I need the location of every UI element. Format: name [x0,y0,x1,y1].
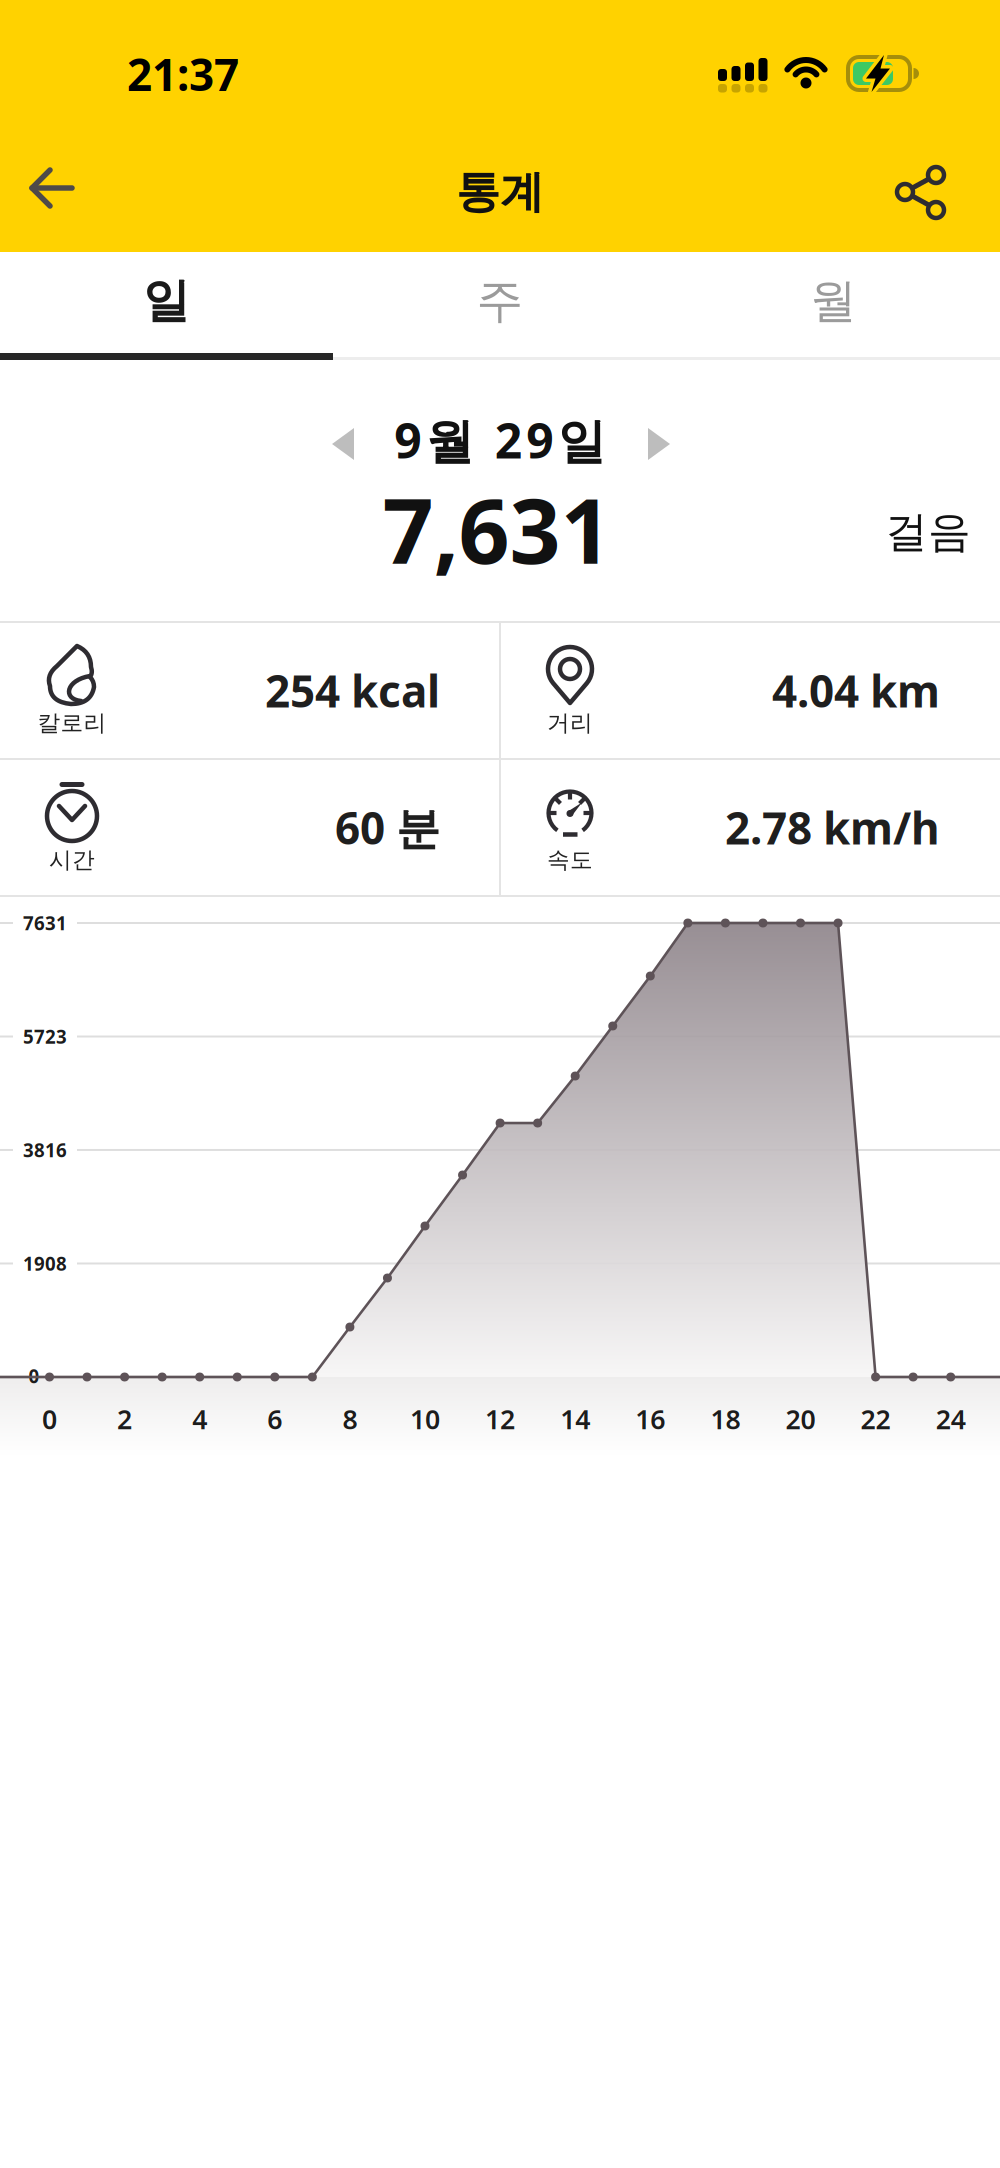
staticText: 거리 [547,709,593,737]
button[interactable]: 주 [333,251,666,351]
staticText: 0 [42,1401,57,1437]
staticText: 7,631 [382,470,611,588]
staticText: 0 [28,1364,39,1388]
staticText: 4 [192,1401,207,1437]
staticText: 3816 [23,1138,67,1162]
staticText: 22 [861,1401,891,1437]
staticText: 걸음 [885,506,971,558]
staticText: 월 [810,272,857,330]
button[interactable]: 일 [0,251,333,351]
staticText: 8 [342,1401,357,1437]
staticText: 통계 [456,165,544,219]
staticText: 6 [267,1401,282,1437]
staticText: 16 [635,1401,665,1437]
staticText: 24 [936,1401,966,1437]
button[interactable]: Back [18,157,86,219]
staticText: 속도 [547,846,593,874]
staticText: 21:37 [127,45,239,103]
staticText: 5723 [23,1024,67,1049]
staticText: 12 [485,1401,515,1437]
button[interactable]: Next day [638,418,680,470]
staticText: 4.04 km [772,661,940,720]
staticText: 10 [410,1401,440,1437]
button[interactable]: 월 [667,251,1000,351]
button[interactable]: Share [885,155,956,230]
staticText: 9월 29일 [394,408,606,472]
staticText: 주 [476,272,523,330]
staticText: 일 [143,272,190,330]
staticText: 칼로리 [37,709,106,737]
staticText: 18 [710,1401,740,1437]
staticText: 2.78 km/h [725,798,940,857]
staticText: 14 [560,1401,590,1437]
staticText: 20 [785,1401,815,1437]
staticText: 60 분 [335,798,440,857]
staticText: 254 kcal [265,661,440,720]
button[interactable]: Previous day [322,418,364,470]
staticText: 시간 [49,846,95,874]
staticText: 1908 [23,1251,67,1276]
staticText: 2 [117,1401,132,1437]
staticText: 7631 [23,911,67,935]
